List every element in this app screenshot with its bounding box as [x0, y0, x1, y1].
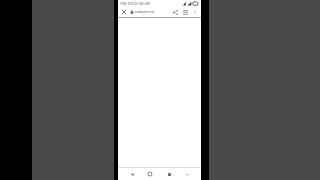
button[interactable]: Hide keyboard — [182, 169, 192, 179]
button[interactable]: Close — [120, 8, 128, 16]
button[interactable]: Back — [127, 169, 137, 179]
button[interactable]: Share — [171, 8, 180, 17]
staticText: example.info — [135, 10, 155, 14]
button[interactable]: Home — [145, 169, 155, 179]
staticText: THIS SITE IS SECURE — [120, 2, 151, 6]
button[interactable]: Recent apps — [164, 169, 174, 179]
button[interactable]: More options — [191, 8, 199, 16]
button[interactable]: example.info — [130, 10, 171, 14]
button[interactable]: Bookmark — [181, 8, 190, 17]
